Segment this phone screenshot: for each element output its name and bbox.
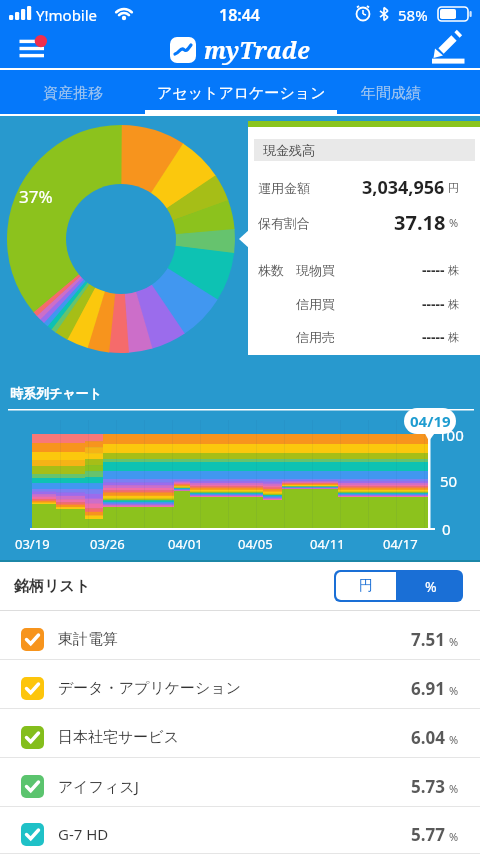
staticText: データ・アプリケーション: [58, 679, 242, 698]
staticText: 100: [438, 425, 464, 445]
button[interactable]: 円: [336, 572, 396, 600]
button[interactable]: アイフィスJ: [0, 758, 480, 807]
staticText: 株: [448, 263, 459, 277]
staticText: -----: [422, 294, 445, 313]
staticText: 37.18: [394, 209, 446, 236]
staticText: G-7 HD: [58, 824, 109, 844]
staticText: Y!mobile: [36, 5, 98, 25]
staticText: 04/11: [310, 535, 345, 553]
staticText: 03/26: [90, 535, 125, 553]
button[interactable]: 日本社宅サービス: [0, 709, 480, 758]
staticText: %: [449, 215, 459, 230]
staticText: 運用金額: [258, 180, 310, 196]
staticText: 信用買: [296, 296, 335, 312]
staticText: 銘柄リスト: [14, 577, 91, 596]
staticText: 年間成績: [361, 84, 421, 103]
staticText: 50: [440, 471, 458, 491]
staticText: 03/19: [15, 535, 50, 553]
staticText: 株: [448, 297, 459, 311]
button[interactable]: データ・アプリケーション: [0, 660, 480, 709]
staticText: 5.77: [411, 823, 445, 846]
staticText: -----: [422, 260, 445, 279]
staticText: %: [449, 781, 459, 796]
staticText: %: [449, 732, 459, 747]
staticText: -----: [422, 327, 445, 346]
button[interactable]: [0, 28, 56, 70]
staticText: 信用売: [296, 329, 335, 345]
staticText: 04/01: [168, 535, 203, 553]
staticText: 時系列チャート: [10, 385, 102, 401]
staticText: アイフィスJ: [58, 776, 139, 796]
staticText: 0: [442, 519, 451, 539]
staticText: 株: [448, 330, 459, 344]
staticText: 現物買: [296, 262, 335, 278]
staticText: 04/19: [410, 411, 451, 431]
button[interactable]: %: [398, 570, 463, 602]
staticText: 7.51: [411, 628, 445, 651]
button[interactable]: 年間成績: [337, 70, 445, 116]
staticText: 37%: [19, 185, 53, 208]
button[interactable]: G-7 HD: [0, 807, 480, 854]
staticText: 日本社宅サービス: [58, 728, 180, 747]
staticText: 円: [359, 577, 373, 595]
staticText: 東計電算: [58, 630, 118, 649]
staticText: 5.73: [411, 775, 445, 798]
staticText: %: [449, 829, 459, 844]
button[interactable]: 資産推移: [0, 70, 145, 116]
staticText: %: [449, 683, 459, 698]
button[interactable]: アセットアロケーション: [145, 70, 337, 116]
staticText: 58%: [398, 5, 428, 25]
staticText: 資産推移: [43, 84, 103, 103]
button[interactable]: [424, 28, 480, 70]
staticText: myTrade: [204, 34, 310, 65]
staticText: 6.91: [411, 677, 445, 700]
staticText: 04/17: [383, 535, 418, 553]
staticText: %: [449, 634, 459, 649]
staticText: 保有割合: [258, 215, 310, 231]
staticText: %: [425, 577, 437, 596]
staticText: アセットアロケーション: [157, 84, 326, 103]
staticText: 円: [448, 181, 459, 195]
staticText: 株数: [258, 262, 284, 278]
staticText: 6.04: [411, 726, 445, 749]
staticText: 18:44: [219, 4, 261, 26]
staticText: 04/05: [238, 535, 273, 553]
button[interactable]: 東計電算: [0, 611, 480, 660]
staticText: 現金残高: [263, 142, 315, 158]
staticText: 3,034,956: [362, 175, 445, 200]
